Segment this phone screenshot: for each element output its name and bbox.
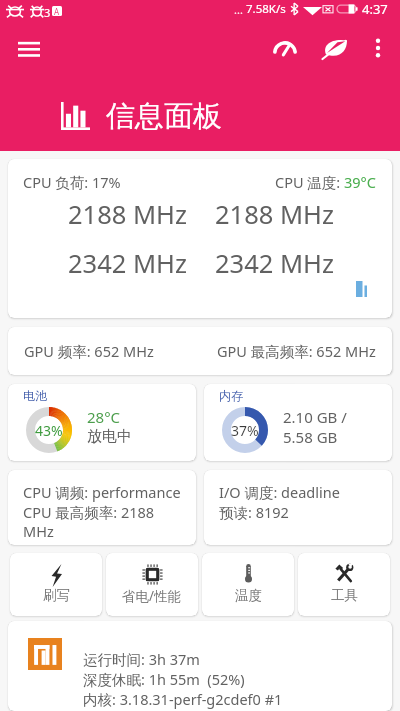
staticText: GPU 频率: 652 MHz bbox=[24, 341, 154, 361]
staticText: 放电中 bbox=[87, 427, 132, 446]
staticText: 运行时间: 3h 37m bbox=[83, 649, 200, 669]
button[interactable]: 刷写 bbox=[10, 553, 102, 616]
button[interactable]: More options bbox=[363, 33, 393, 63]
staticText: 内存 bbox=[219, 388, 243, 403]
staticText: CPU 温度: bbox=[275, 172, 344, 192]
staticText: GPU 最高频率: 652 MHz bbox=[217, 341, 376, 361]
staticText: I/O 调度: deadline bbox=[219, 482, 340, 502]
staticText: CPU 调频: performance bbox=[23, 482, 181, 502]
staticText: 信息面板 bbox=[106, 98, 222, 135]
staticText: CPU 负荷: 17% bbox=[23, 172, 121, 192]
staticText: 5.58 GB bbox=[283, 427, 338, 447]
staticText: 电池 bbox=[23, 388, 47, 403]
staticText: 7.58K/s bbox=[246, 1, 286, 17]
staticText: 4:37 bbox=[362, 0, 388, 18]
staticText: 2188 MHz bbox=[54, 197, 201, 232]
staticText: 2342 MHz bbox=[201, 246, 348, 281]
staticText: 省电/性能 bbox=[122, 587, 182, 605]
staticText: 3 bbox=[44, 5, 51, 20]
staticText: 43% bbox=[35, 421, 63, 440]
staticText: 深度休眠: 1h 55m (52%) bbox=[83, 669, 245, 689]
button[interactable]: Menu bbox=[14, 33, 44, 63]
staticText: CPU 最高频率: 2188 MHz bbox=[23, 502, 181, 541]
button[interactable]: 温度 bbox=[202, 553, 294, 616]
staticText: 内核: 3.18.31-perf-g2cdef0 #1 bbox=[83, 689, 283, 709]
staticText: 37% bbox=[231, 421, 259, 440]
staticText: ... bbox=[234, 2, 243, 17]
staticText: 温度 bbox=[235, 587, 262, 604]
staticText: 2188 MHz bbox=[201, 197, 348, 232]
staticText: 工具 bbox=[331, 587, 358, 604]
staticText: 刷写 bbox=[43, 587, 70, 604]
staticText: 39°C bbox=[344, 172, 376, 192]
button[interactable]: Battery saver bbox=[317, 31, 351, 65]
staticText: 2.10 GB / bbox=[283, 407, 347, 427]
button[interactable]: 工具 bbox=[298, 553, 390, 616]
staticText: 预读: 8192 bbox=[219, 502, 289, 522]
staticText: A bbox=[54, 6, 60, 16]
button[interactable]: Benchmark bbox=[268, 31, 302, 65]
button[interactable]: 省电/性能 bbox=[106, 553, 198, 616]
staticText: 2342 MHz bbox=[54, 246, 201, 281]
staticText: 28°C bbox=[87, 407, 121, 427]
